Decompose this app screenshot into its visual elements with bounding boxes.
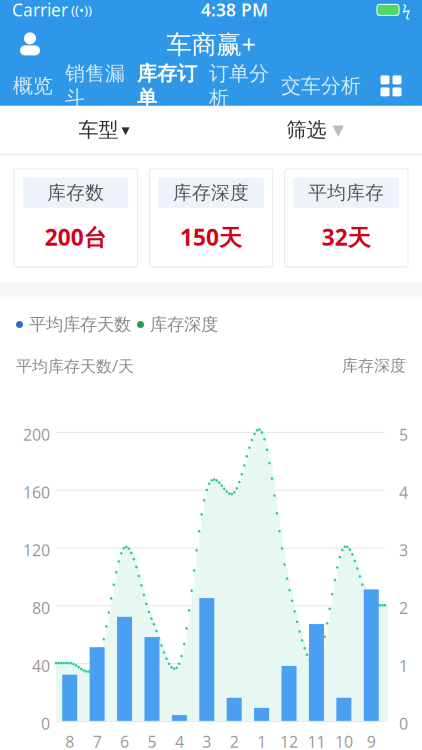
button[interactable]: 车型 <box>68 108 139 152</box>
staticText: 11 <box>307 731 325 750</box>
staticText: 7 <box>93 731 102 750</box>
staticText: 订单分析 <box>209 61 269 110</box>
button[interactable]: More <box>367 68 415 104</box>
staticText: 3 <box>202 731 211 750</box>
staticText: 3 <box>399 539 408 561</box>
button[interactable]: 库存订单 <box>131 68 203 104</box>
staticText: 10 <box>335 731 353 750</box>
staticText: 库存深度 <box>150 314 218 335</box>
staticText: 库存数 <box>47 181 104 204</box>
staticText: 交车分析 <box>281 74 361 98</box>
button[interactable]: Profile <box>8 24 52 64</box>
staticText: 筛选 <box>286 118 326 142</box>
button[interactable]: 销售漏斗 <box>59 68 131 104</box>
staticText: 4 <box>399 482 408 503</box>
button[interactable]: 筛选 <box>276 108 353 152</box>
staticText: 库存深度 <box>173 181 249 204</box>
staticText: ▼ <box>332 122 343 138</box>
staticText: 120 <box>23 539 50 561</box>
staticText: 0 <box>399 713 408 734</box>
staticText: 销售漏斗 <box>65 61 125 110</box>
staticText: 40 <box>32 655 50 676</box>
staticText: 4:38 PM <box>201 0 268 21</box>
staticText: 150天 <box>180 222 242 252</box>
staticText: 200台 <box>45 222 107 252</box>
staticText: 5 <box>399 424 408 445</box>
button[interactable]: 订单分析 <box>203 68 275 104</box>
staticText: ϟ <box>402 0 410 20</box>
staticText: 库存深度 <box>342 356 406 376</box>
staticText: 1 <box>257 731 266 750</box>
staticText: 1 <box>399 655 408 676</box>
staticText: 80 <box>32 597 50 618</box>
staticText: ((•)) <box>68 1 92 19</box>
staticText: 5 <box>147 731 156 750</box>
staticText: 库存订单 <box>137 61 197 110</box>
staticText: 车商赢+ <box>166 27 255 61</box>
staticText: ▾ <box>121 121 129 139</box>
staticText: 概览 <box>13 74 53 98</box>
staticText: 160 <box>23 482 50 503</box>
button[interactable]: 概览 <box>7 68 59 104</box>
staticText: 0 <box>41 713 50 734</box>
staticText: Carrier <box>12 0 68 21</box>
staticText: 12 <box>280 731 298 750</box>
staticText: 2 <box>399 597 408 618</box>
staticText: 平均库存 <box>308 181 384 204</box>
staticText: 32天 <box>322 222 371 252</box>
staticText: 6 <box>120 731 129 750</box>
staticText: 200 <box>23 424 50 445</box>
staticText: 车型 <box>78 118 118 142</box>
staticText: 8 <box>65 731 74 750</box>
staticText: 平均库存天数 <box>29 314 131 335</box>
staticText: 4 <box>175 731 184 750</box>
staticText: 2 <box>230 731 239 750</box>
staticText: 平均库存天数/天 <box>16 355 134 376</box>
staticText: 9 <box>367 731 376 750</box>
button[interactable]: 交车分析 <box>275 68 367 104</box>
